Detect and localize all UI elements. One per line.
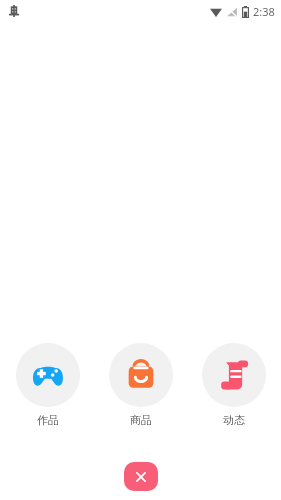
staticText: 2:38: [253, 4, 275, 19]
button[interactable]: 关闭: [124, 462, 158, 491]
button[interactable]: 商品: [109, 343, 173, 427]
button[interactable]: 动态: [202, 343, 266, 427]
staticText: 作品: [37, 413, 59, 427]
staticText: 商品: [130, 413, 152, 427]
button[interactable]: 作品: [16, 343, 80, 427]
staticText: 动态: [223, 413, 245, 427]
